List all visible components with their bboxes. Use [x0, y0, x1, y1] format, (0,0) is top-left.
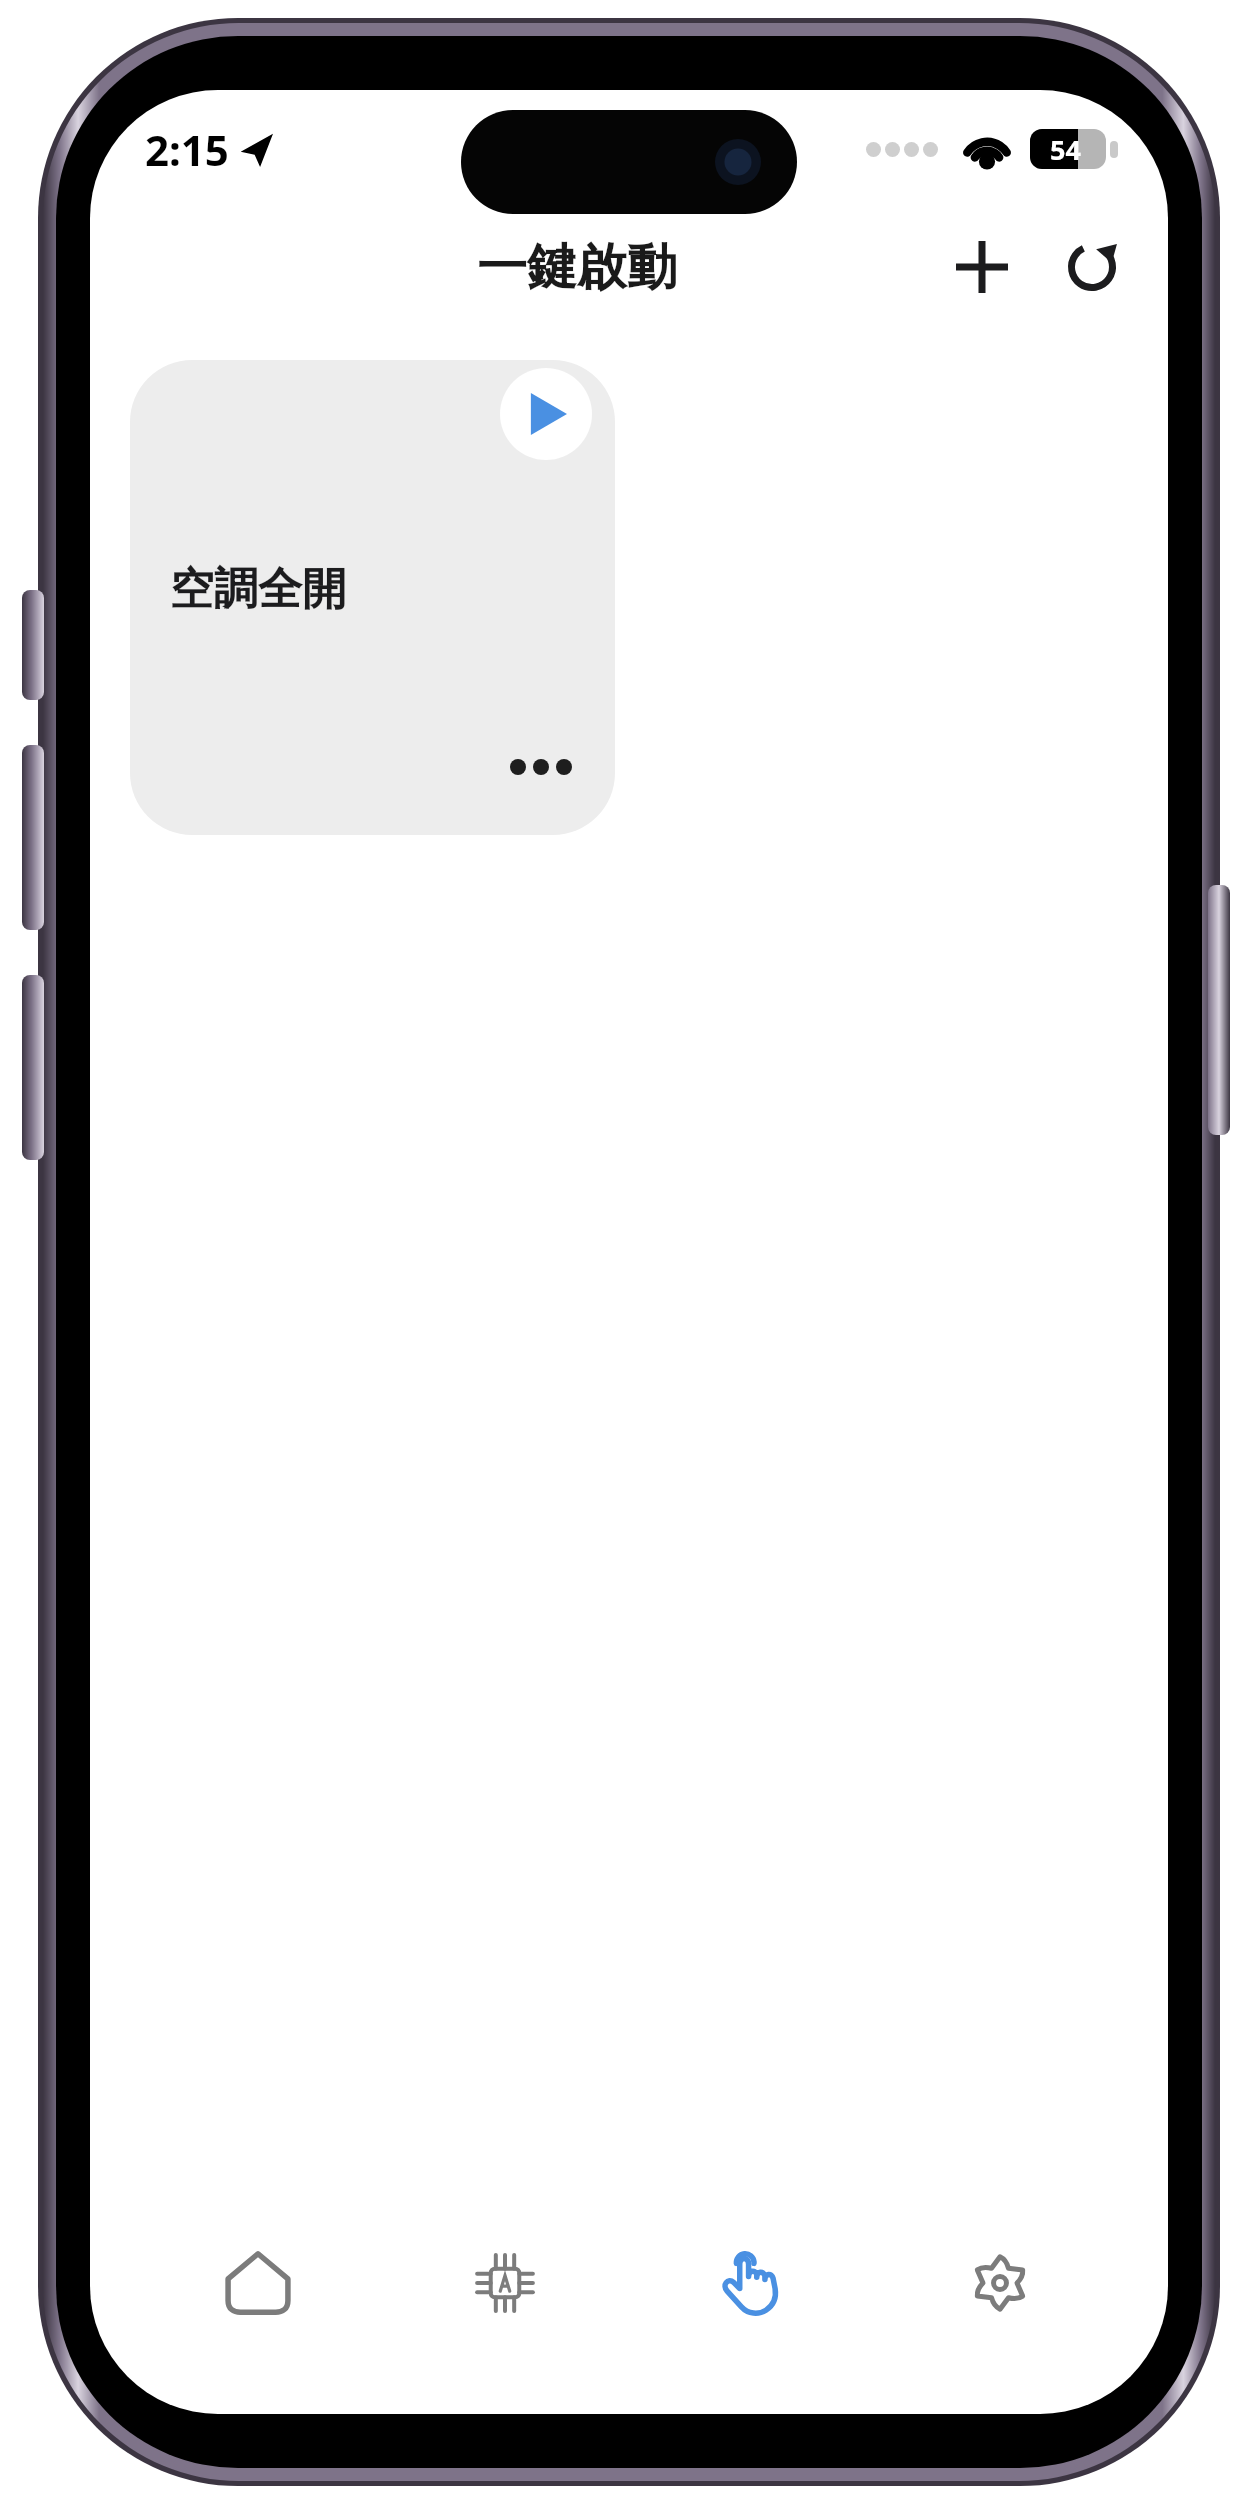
- button[interactable]: 空調全開: [130, 360, 615, 835]
- staticText: 2:15: [145, 121, 229, 178]
- button[interactable]: Add: [936, 221, 1028, 313]
- button[interactable]: Devices: [425, 2218, 585, 2348]
- button[interactable]: Refresh: [1046, 221, 1138, 313]
- button[interactable]: Home: [178, 2218, 338, 2348]
- button[interactable]: Settings: [920, 2218, 1080, 2348]
- staticText: 一鍵啟動: [477, 236, 677, 299]
- button[interactable]: Run scene: [500, 368, 592, 460]
- staticText: 54: [1050, 131, 1081, 168]
- button[interactable]: More options: [493, 719, 589, 815]
- button[interactable]: Scenes: [673, 2218, 833, 2348]
- staticText: 空調全開: [170, 562, 346, 617]
